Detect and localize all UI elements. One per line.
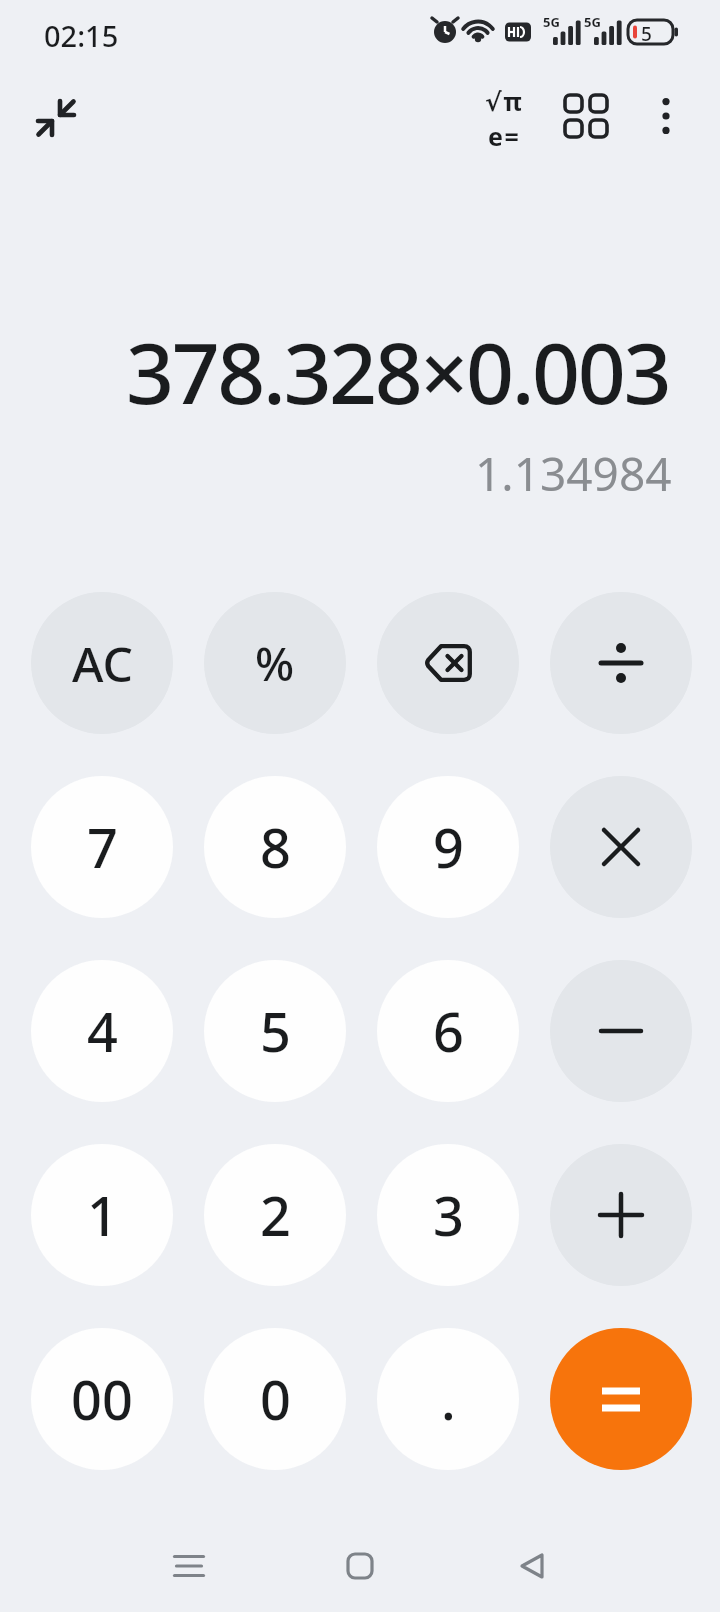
staticText: 4 bbox=[87, 994, 118, 1068]
button[interactable]: % bbox=[204, 592, 346, 734]
button[interactable] bbox=[28, 88, 84, 144]
staticText: 8 bbox=[260, 810, 291, 884]
staticText: 6 bbox=[433, 994, 464, 1068]
staticText: . bbox=[441, 1362, 456, 1436]
staticText: 2 bbox=[260, 1178, 291, 1252]
staticText: 9 bbox=[433, 810, 464, 884]
button[interactable]: 5 bbox=[204, 960, 346, 1102]
button[interactable]: 6 bbox=[377, 960, 519, 1102]
staticText: 5 bbox=[641, 21, 652, 47]
button[interactable] bbox=[550, 592, 692, 734]
button[interactable]: . bbox=[377, 1328, 519, 1470]
button[interactable] bbox=[550, 1328, 692, 1470]
staticText: 7 bbox=[87, 810, 118, 884]
staticText: √π bbox=[485, 84, 524, 118]
button[interactable]: 0 bbox=[204, 1328, 346, 1470]
staticText: 378.328×0.003 bbox=[126, 314, 670, 428]
staticText: 1.134984 bbox=[475, 442, 672, 505]
button[interactable]: 1 bbox=[31, 1144, 173, 1286]
button[interactable] bbox=[139, 1541, 239, 1591]
button[interactable] bbox=[377, 592, 519, 734]
button[interactable] bbox=[550, 776, 692, 918]
staticText: 0 bbox=[260, 1362, 291, 1436]
button[interactable]: 8 bbox=[204, 776, 346, 918]
staticText: e= bbox=[488, 119, 521, 148]
staticText: 5G bbox=[584, 13, 601, 31]
staticText: 5 bbox=[260, 994, 291, 1068]
button[interactable] bbox=[483, 1541, 583, 1591]
staticText: 02:15 bbox=[44, 16, 119, 55]
button[interactable] bbox=[642, 92, 690, 140]
button[interactable]: 00 bbox=[31, 1328, 173, 1470]
staticText: % bbox=[255, 632, 295, 695]
button[interactable]: 2 bbox=[204, 1144, 346, 1286]
staticText: 1 bbox=[87, 1178, 118, 1252]
staticText: 5G bbox=[543, 13, 560, 31]
staticText: 00 bbox=[71, 1362, 133, 1436]
button[interactable]: 4 bbox=[31, 960, 173, 1102]
button[interactable]: 7 bbox=[31, 776, 173, 918]
button[interactable]: 9 bbox=[377, 776, 519, 918]
button[interactable] bbox=[554, 84, 618, 148]
staticText: 3 bbox=[433, 1178, 464, 1252]
button[interactable] bbox=[550, 960, 692, 1102]
button[interactable]: √π bbox=[472, 84, 536, 148]
button[interactable]: AC bbox=[31, 592, 173, 734]
staticText: AC bbox=[72, 631, 133, 696]
button[interactable] bbox=[310, 1541, 410, 1591]
button[interactable] bbox=[550, 1144, 692, 1286]
button[interactable]: 3 bbox=[377, 1144, 519, 1286]
